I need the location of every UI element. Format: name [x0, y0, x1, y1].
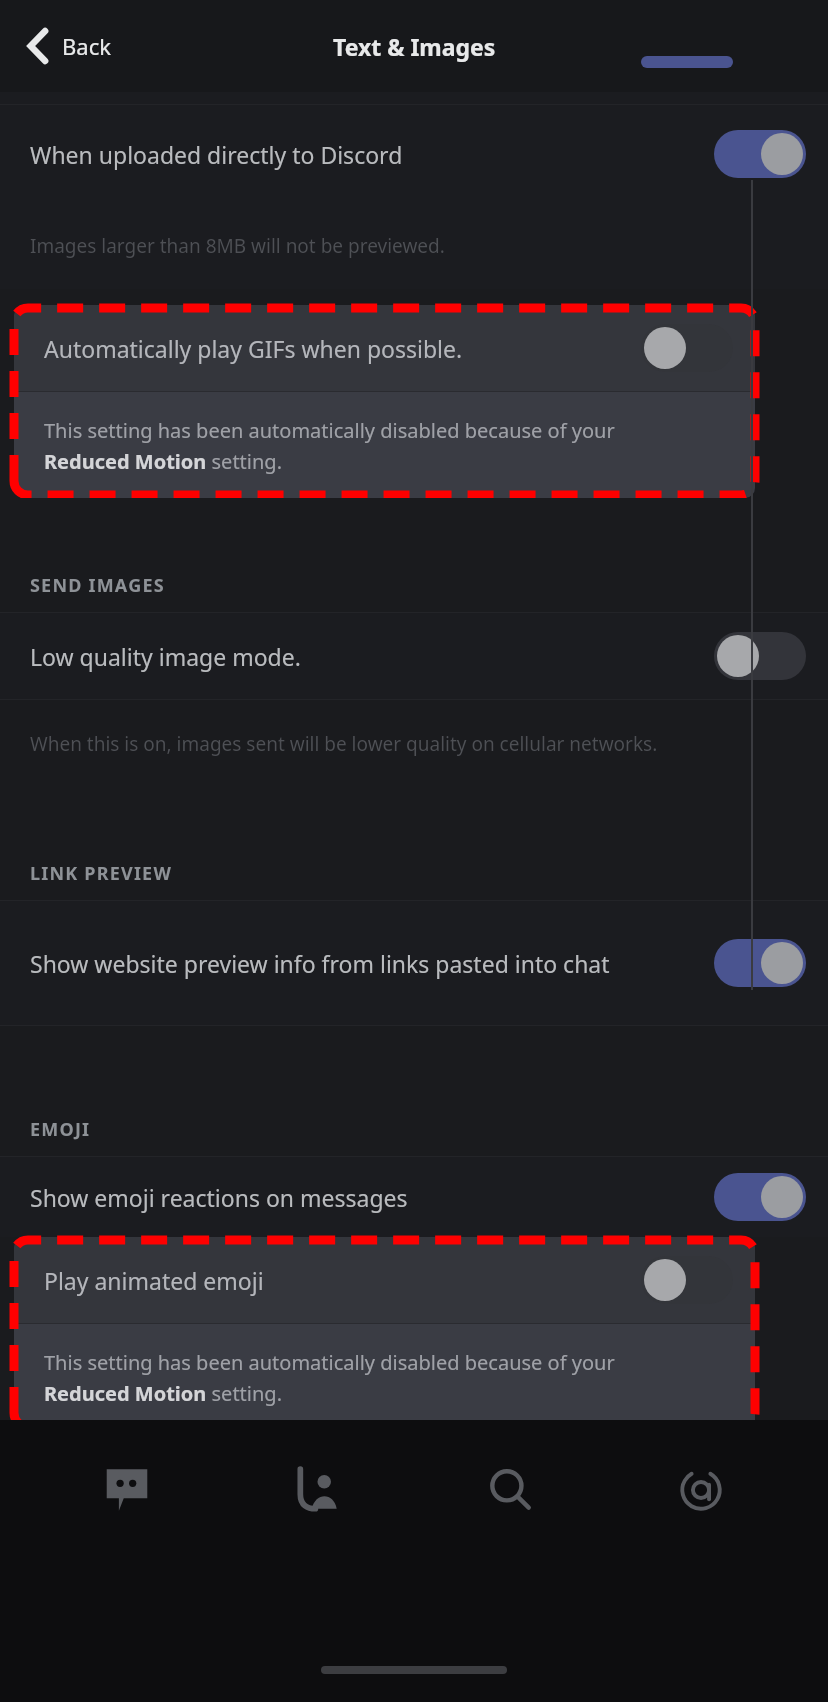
- button[interactable]: When uploaded directly to Discord: [0, 105, 828, 203]
- staticText: When this is on, images sent will be low…: [30, 731, 658, 757]
- staticText: LINK PREVIEW: [30, 861, 172, 886]
- button[interactable]: Toggle off: [641, 324, 733, 372]
- button[interactable]: Show website preview info from links pas…: [0, 901, 828, 1025]
- staticText: This setting has been automatically disa…: [44, 417, 705, 474]
- button[interactable]: Automatically play GIFs when possible.: [14, 305, 755, 391]
- staticText: Back: [62, 31, 111, 61]
- button[interactable]: Show emoji reactions on messages: [0, 1157, 828, 1237]
- staticText: Images larger than 8MB will not be previ…: [30, 233, 445, 259]
- button[interactable]: Toggle on: [714, 130, 806, 178]
- staticText: This setting has been automatically disa…: [44, 1349, 705, 1406]
- button[interactable]: Toggle on: [714, 1173, 806, 1221]
- button[interactable]: Back: [20, 21, 119, 71]
- button[interactable]: Search: [445, 1435, 575, 1545]
- button[interactable]: Play animated emoji: [14, 1237, 755, 1323]
- staticText: Low quality image mode.: [30, 641, 670, 672]
- button[interactable]: Low quality image mode.: [0, 613, 828, 699]
- button[interactable]: Friends: [253, 1435, 383, 1545]
- staticText: Automatically play GIFs when possible.: [44, 333, 684, 364]
- staticText: Show website preview info from links pas…: [30, 948, 610, 979]
- button[interactable]: Toggle off: [641, 1256, 733, 1304]
- staticText: EMOJI: [30, 1117, 91, 1142]
- button[interactable]: Toggle on: [714, 939, 806, 987]
- staticText: Show emoji reactions on messages: [30, 1182, 670, 1213]
- staticText: Text & Images: [333, 31, 496, 62]
- staticText: STICKERS: [30, 1489, 123, 1514]
- button[interactable]: Mentions: [636, 1435, 766, 1545]
- staticText: SEND IMAGES: [30, 573, 165, 598]
- button[interactable]: Messages: [62, 1435, 192, 1545]
- staticText: When uploaded directly to Discord: [30, 139, 670, 170]
- staticText: Play animated emoji: [44, 1265, 684, 1296]
- button[interactable]: Toggle off: [714, 632, 806, 680]
